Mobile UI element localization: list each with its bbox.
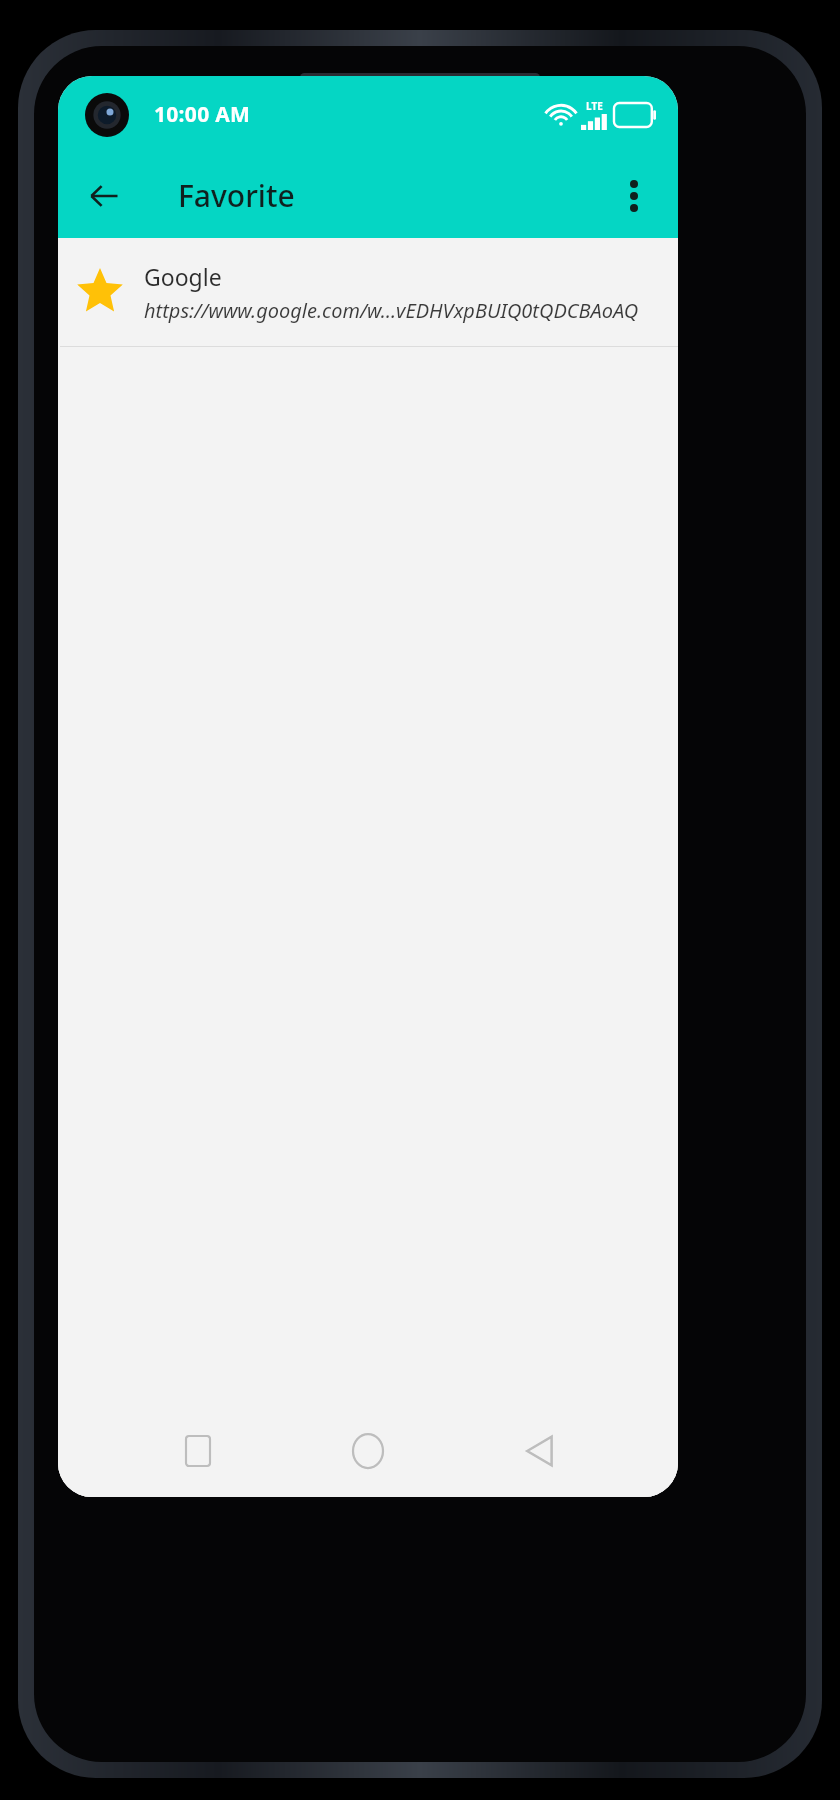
staticText: LTE xyxy=(586,99,603,113)
staticText: 10:00 AM xyxy=(154,100,251,129)
staticText: https://www.google.com/w…vEDHVxpBUIQ0tQD… xyxy=(144,297,639,324)
button[interactable]: Home xyxy=(337,1420,399,1482)
button[interactable]: Back xyxy=(508,1420,570,1482)
button[interactable]: More options xyxy=(608,170,660,222)
button[interactable]: Google xyxy=(58,238,678,346)
staticText: Google xyxy=(144,261,222,292)
button[interactable]: Recent apps xyxy=(167,1420,229,1482)
button[interactable]: Back xyxy=(78,170,130,222)
staticText: Favorite xyxy=(178,175,295,216)
